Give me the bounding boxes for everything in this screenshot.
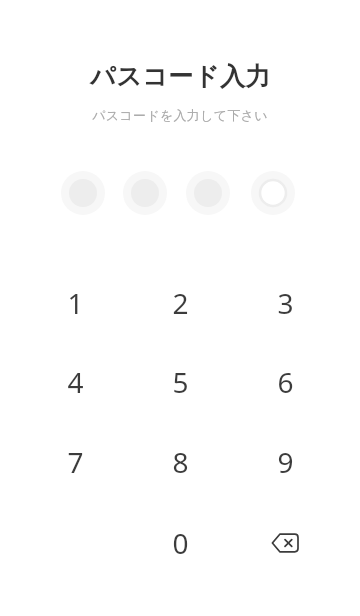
button[interactable]: 3: [237, 268, 333, 338]
staticText: パスコードを入力して下さい: [92, 107, 268, 123]
button[interactable]: 6: [237, 347, 333, 417]
staticText: 4: [67, 363, 84, 401]
staticText: パスコード入力: [90, 61, 271, 92]
staticText: 0: [172, 524, 189, 562]
staticText: 3: [277, 284, 294, 322]
button[interactable]: 2: [132, 268, 228, 338]
staticText: 6: [277, 363, 294, 401]
staticText: 5: [172, 363, 189, 401]
button[interactable]: 4: [27, 347, 123, 417]
button[interactable]: Backspace: [237, 508, 333, 578]
staticText: 1: [67, 284, 84, 322]
staticText: 7: [67, 443, 84, 481]
staticText: 9: [277, 443, 294, 481]
button[interactable]: 8: [132, 427, 228, 497]
staticText: 8: [172, 443, 189, 481]
button[interactable]: 0: [132, 508, 228, 578]
button[interactable]: 1: [27, 268, 123, 338]
button[interactable]: 7: [27, 427, 123, 497]
staticText: 2: [172, 284, 189, 322]
button[interactable]: 9: [237, 427, 333, 497]
button[interactable]: 5: [132, 347, 228, 417]
